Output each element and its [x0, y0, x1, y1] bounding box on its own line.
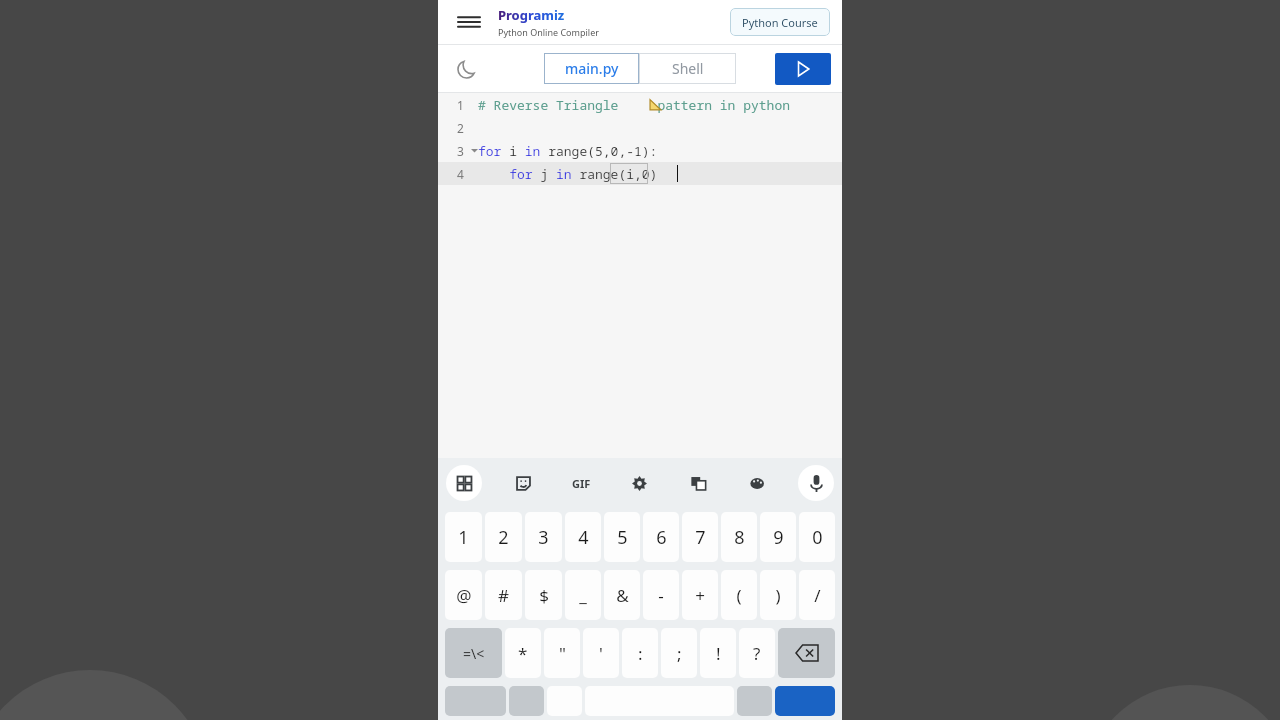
- button[interactable]: 0: [799, 512, 835, 562]
- button[interactable]: Settings: [621, 465, 657, 501]
- staticText: 1: [458, 525, 469, 550]
- button[interactable]: -: [643, 570, 679, 620]
- button[interactable]: 3: [525, 512, 562, 562]
- button[interactable]: Enter: [775, 686, 835, 716]
- staticText: ): [775, 584, 781, 607]
- staticText: Programiz: [498, 6, 565, 24]
- button[interactable]: Shell: [639, 53, 736, 84]
- staticText: *: [518, 642, 528, 665]
- staticText: +: [695, 584, 705, 607]
- staticText: 9: [773, 525, 784, 550]
- button[interactable]: 2: [485, 512, 522, 562]
- button[interactable]: 6: [643, 512, 679, 562]
- staticText: _: [579, 584, 587, 607]
- button[interactable]: ;: [661, 628, 697, 678]
- button[interactable]: 7: [682, 512, 718, 562]
- button[interactable]: !: [700, 628, 736, 678]
- staticText: =\<: [463, 644, 485, 663]
- button[interactable]: 2: [438, 116, 842, 139]
- staticText: @: [456, 584, 472, 607]
- button[interactable]: :: [622, 628, 658, 678]
- button[interactable]: 9: [760, 512, 796, 562]
- staticText: for i in range(5,0,-1):: [478, 142, 658, 160]
- button[interactable]: GIF: [564, 466, 598, 500]
- staticText: 4: [457, 166, 464, 182]
- button[interactable]: 8: [721, 512, 757, 562]
- staticText: 6: [656, 525, 667, 550]
- button[interactable]: #: [485, 570, 522, 620]
- button[interactable]: Theme: [739, 465, 775, 501]
- button[interactable]: Translate: [680, 465, 716, 501]
- button[interactable]: ": [544, 628, 580, 678]
- button[interactable]: Python Course: [730, 8, 830, 36]
- staticText: Python Course: [742, 15, 818, 30]
- button[interactable]: ': [583, 628, 619, 678]
- staticText: 8: [734, 525, 745, 550]
- staticText: ': [599, 642, 603, 665]
- button[interactable]: Period: [737, 686, 772, 716]
- staticText: GIF: [572, 476, 591, 491]
- button[interactable]: Run: [775, 53, 831, 85]
- button[interactable]: 1: [438, 93, 842, 116]
- staticText: Shell: [672, 59, 704, 78]
- button[interactable]: =\<: [445, 628, 502, 678]
- button[interactable]: _: [565, 570, 601, 620]
- staticText: :: [638, 642, 643, 665]
- button[interactable]: Apps: [446, 465, 482, 501]
- button[interactable]: Comma: [509, 686, 544, 716]
- button[interactable]: $: [525, 570, 562, 620]
- staticText: (: [736, 584, 742, 607]
- button[interactable]: Backspace: [778, 628, 835, 678]
- button[interactable]: ): [760, 570, 796, 620]
- staticText: for j in range(i,0): [478, 165, 658, 183]
- staticText: 2: [498, 525, 509, 550]
- button[interactable]: &: [604, 570, 640, 620]
- staticText: &: [616, 584, 629, 607]
- staticText: 4: [578, 525, 589, 550]
- button[interactable]: @: [445, 570, 482, 620]
- button[interactable]: +: [682, 570, 718, 620]
- button[interactable]: Symbols: [445, 686, 506, 716]
- button[interactable]: Voice input: [798, 465, 834, 501]
- button[interactable]: 4: [438, 162, 842, 185]
- staticText: ": [559, 642, 566, 665]
- staticText: /: [814, 584, 821, 607]
- button[interactable]: 3: [438, 139, 842, 162]
- button[interactable]: 5: [604, 512, 640, 562]
- staticText: !: [716, 642, 721, 665]
- button[interactable]: Stickers: [505, 465, 541, 501]
- staticText: ?: [753, 642, 761, 665]
- button[interactable]: ?: [739, 628, 775, 678]
- staticText: 5: [617, 525, 628, 550]
- button[interactable]: Dark mode: [450, 53, 482, 85]
- staticText: 1: [457, 97, 464, 113]
- button[interactable]: (: [721, 570, 757, 620]
- staticText: 7: [695, 525, 706, 550]
- staticText: $: [539, 584, 549, 607]
- staticText: 2: [457, 120, 464, 136]
- button[interactable]: Menu: [454, 7, 484, 37]
- staticText: Python Online Compiler: [498, 26, 599, 38]
- staticText: ;: [677, 642, 682, 665]
- staticText: -: [658, 584, 664, 607]
- button[interactable]: 4: [565, 512, 601, 562]
- button[interactable]: 1: [445, 512, 482, 562]
- staticText: # Reverse Triangle pattern in python: [478, 96, 790, 114]
- staticText: #: [498, 584, 509, 607]
- staticText: main.py: [565, 59, 619, 78]
- button[interactable]: main.py: [544, 53, 639, 84]
- staticText: 3: [457, 143, 464, 159]
- button[interactable]: /: [799, 570, 835, 620]
- staticText: 3: [538, 525, 549, 550]
- button[interactable]: *: [505, 628, 541, 678]
- staticText: 0: [812, 525, 823, 550]
